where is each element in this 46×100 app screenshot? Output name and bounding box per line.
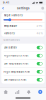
button[interactable]: Alerts (23, 88, 34, 96)
staticText: 21°C (36, 24, 42, 28)
button[interactable]: Statistics (11, 88, 23, 96)
button[interactable]: Settings (34, 88, 46, 96)
button[interactable]: High Temperature Alert (1, 68, 45, 76)
button[interactable]: Account (40, 5, 46, 11)
button[interactable]: Temperature (1, 23, 45, 29)
staticText: 46% (36, 32, 42, 35)
staticText: Temperature (3, 24, 16, 28)
staticText: Humidity (3, 32, 14, 35)
button[interactable]: High Humidity Alert (1, 52, 45, 60)
staticText: NOTIFICATIONS (3, 39, 19, 41)
staticText: High Temperature Alert (3, 70, 30, 73)
button[interactable]: Humidity (1, 30, 45, 37)
button[interactable]: Low Temperature Alert (1, 60, 45, 68)
staticText: Settings (17, 7, 29, 10)
staticText: Target Humidity (3, 14, 22, 17)
button[interactable]: Home (0, 88, 11, 96)
staticText: Low Humidity Alert (3, 78, 26, 81)
staticText: 9:41 (3, 1, 9, 4)
button[interactable]: Back (0, 5, 5, 11)
staticText: High Humidity Alert (3, 54, 28, 57)
staticText: Low Temperature Alert (3, 62, 28, 65)
button[interactable]: Low Humidity Alert (1, 76, 45, 84)
button[interactable]: Low Battery (1, 44, 45, 51)
staticText: Low Battery (3, 46, 16, 49)
